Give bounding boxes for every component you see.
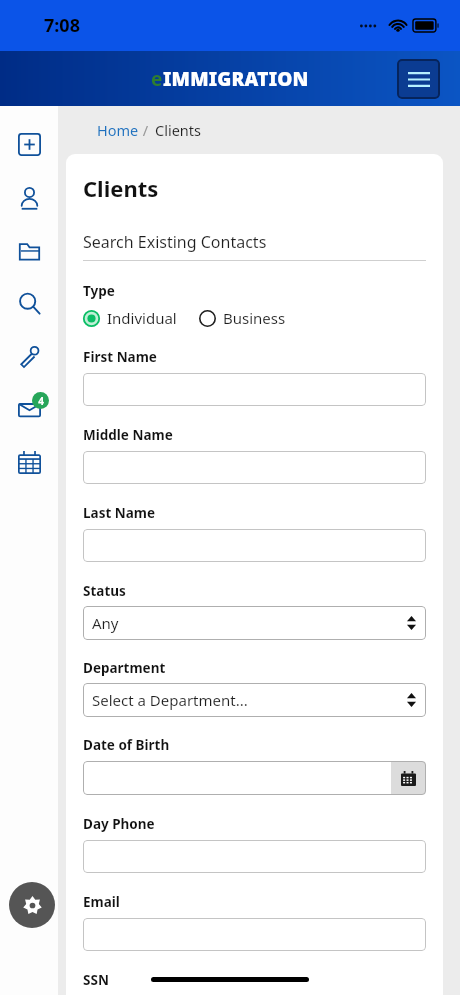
button[interactable]: Cases folder (0, 224, 58, 277)
button[interactable]: Individual (83, 308, 177, 328)
button[interactable]: Home (97, 120, 139, 140)
staticText: Status (83, 582, 126, 600)
button[interactable]: Pick date (391, 761, 426, 795)
staticText: Search Existing Contacts (83, 231, 267, 253)
staticText: / (139, 120, 152, 140)
staticText: Date of Birth (83, 736, 170, 754)
button[interactable] (83, 529, 426, 562)
button[interactable] (83, 761, 391, 795)
button[interactable]: Add new (0, 118, 58, 171)
staticText: Middle Name (83, 426, 173, 444)
staticText: Type (83, 282, 115, 300)
staticText: Select a Department... (92, 690, 248, 710)
staticText: Clients (83, 173, 159, 203)
staticText: Business (223, 308, 286, 328)
staticText: Last Name (83, 504, 156, 522)
button[interactable]: Tools (0, 330, 58, 383)
button[interactable] (83, 451, 426, 484)
button[interactable]: Search (0, 277, 58, 330)
staticText: e (151, 66, 163, 92)
staticText: 4 (38, 394, 44, 408)
button[interactable]: Settings (9, 882, 55, 928)
button[interactable] (83, 840, 426, 873)
staticText: First Name (83, 348, 157, 366)
staticText: Department (83, 659, 166, 677)
button[interactable] (83, 373, 426, 406)
button[interactable]: Any (83, 606, 426, 640)
button[interactable]: Messages, 4 unread (0, 383, 58, 436)
staticText: 7:08 (44, 13, 80, 38)
button[interactable]: Calendar (0, 436, 58, 489)
button[interactable] (83, 918, 426, 951)
button[interactable]: Contacts (0, 171, 58, 224)
staticText: Individual (107, 308, 177, 328)
button[interactable]: Select a Department... (83, 683, 426, 717)
staticText: Clients (155, 120, 201, 140)
button[interactable]: Business (199, 308, 286, 328)
button[interactable]: Search Existing Contacts (83, 231, 426, 261)
button[interactable]: Open navigation menu (397, 59, 440, 99)
staticText: IMMIGRATION (163, 66, 309, 92)
staticText: SSN (83, 971, 109, 989)
staticText: Any (92, 613, 119, 633)
staticText: Email (83, 893, 120, 911)
staticText: Day Phone (83, 815, 155, 833)
